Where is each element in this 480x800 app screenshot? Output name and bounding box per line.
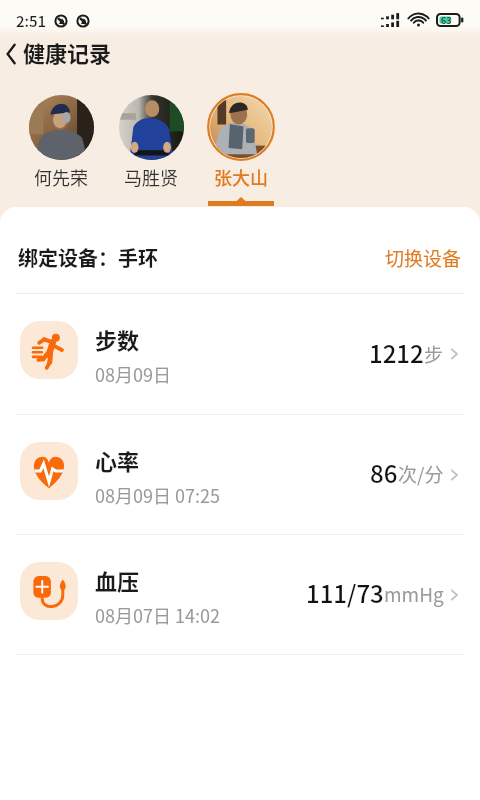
button[interactable]: 心率 <box>0 415 480 534</box>
other: Back <box>1 43 23 65</box>
button[interactable]: 步数 <box>0 294 480 414</box>
button[interactable]: 切换设备 <box>385 244 462 272</box>
staticText: 08月09日 07:25 <box>95 482 220 508</box>
staticText: 2:51 <box>16 10 47 32</box>
staticText: 111/73 <box>306 575 384 610</box>
button[interactable]: 血压 <box>0 535 480 654</box>
staticText: 心率 <box>95 444 140 476</box>
staticText: 08月09日 <box>95 361 171 387</box>
staticText: 63 <box>441 14 452 27</box>
button[interactable]: 何先荣 <box>16 74 106 190</box>
staticText: 步数 <box>95 323 140 355</box>
staticText: 1212 <box>369 335 424 370</box>
staticText: 次/分 <box>398 460 444 488</box>
staticText: 张大山 <box>214 164 268 190</box>
staticText: 血压 <box>95 564 140 596</box>
staticText: 何先荣 <box>34 164 88 190</box>
staticText: 86 <box>370 455 398 490</box>
staticText: 健康记录 <box>23 36 112 68</box>
button[interactable]: Back <box>0 38 120 70</box>
staticText: 切换设备 <box>385 244 462 272</box>
staticText: 绑定设备：手环 <box>18 243 158 272</box>
staticText: 马胜贤 <box>124 164 178 190</box>
staticText: 08月07日 14:02 <box>95 602 220 628</box>
staticText: 步 <box>424 340 444 368</box>
button[interactable]: 马胜贤 <box>106 74 196 190</box>
staticText: mmHg <box>384 580 444 608</box>
button[interactable]: 张大山 <box>196 74 286 207</box>
